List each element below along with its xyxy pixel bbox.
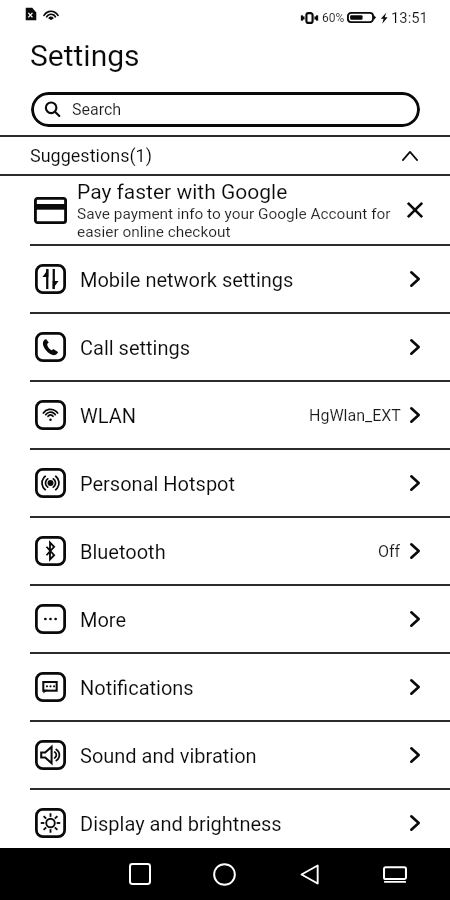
button[interactable]: Bluetooth: [0, 518, 450, 584]
button[interactable]: Dismiss suggestion: [398, 193, 432, 227]
button[interactable]: Pay faster with Google: [0, 176, 450, 244]
staticText: Search: [72, 100, 122, 119]
staticText: WLAN: [80, 404, 137, 427]
staticText: Call settings: [80, 336, 191, 359]
button[interactable]: Back: [267, 848, 352, 900]
staticText: Settings: [30, 38, 140, 73]
staticText: Bluetooth: [80, 540, 166, 563]
button[interactable]: Display and brightness: [0, 790, 450, 856]
staticText: Suggestions(1): [30, 145, 152, 166]
staticText: HgWlan_EXT: [309, 406, 401, 425]
button[interactable]: WLAN: [0, 382, 450, 448]
staticText: More: [80, 608, 127, 631]
button[interactable]: Suggestions(1): [0, 137, 450, 174]
button[interactable]: Mobile network settings: [0, 246, 450, 312]
button[interactable]: Notifications: [0, 654, 450, 720]
staticText: 13:51: [391, 9, 428, 26]
button[interactable]: Call settings: [0, 314, 450, 380]
staticText: 60%: [322, 11, 345, 25]
staticText: Save payment info to your Google Account…: [77, 205, 394, 241]
staticText: Notifications: [80, 676, 194, 699]
button[interactable]: Personal Hotspot: [0, 450, 450, 516]
button[interactable]: Split screen: [352, 848, 437, 900]
staticText: Personal Hotspot: [80, 472, 236, 495]
staticText: Off: [378, 542, 401, 561]
button[interactable]: More: [0, 586, 450, 652]
staticText: Mobile network settings: [80, 268, 294, 291]
staticText: Pay faster with Google: [77, 180, 288, 205]
staticText: Sound and vibration: [80, 744, 257, 767]
button[interactable]: Search: [31, 92, 420, 127]
staticText: Display and brightness: [80, 812, 282, 835]
button[interactable]: Recent apps: [97, 848, 182, 900]
button[interactable]: Sound and vibration: [0, 722, 450, 788]
button[interactable]: Home: [182, 848, 267, 900]
